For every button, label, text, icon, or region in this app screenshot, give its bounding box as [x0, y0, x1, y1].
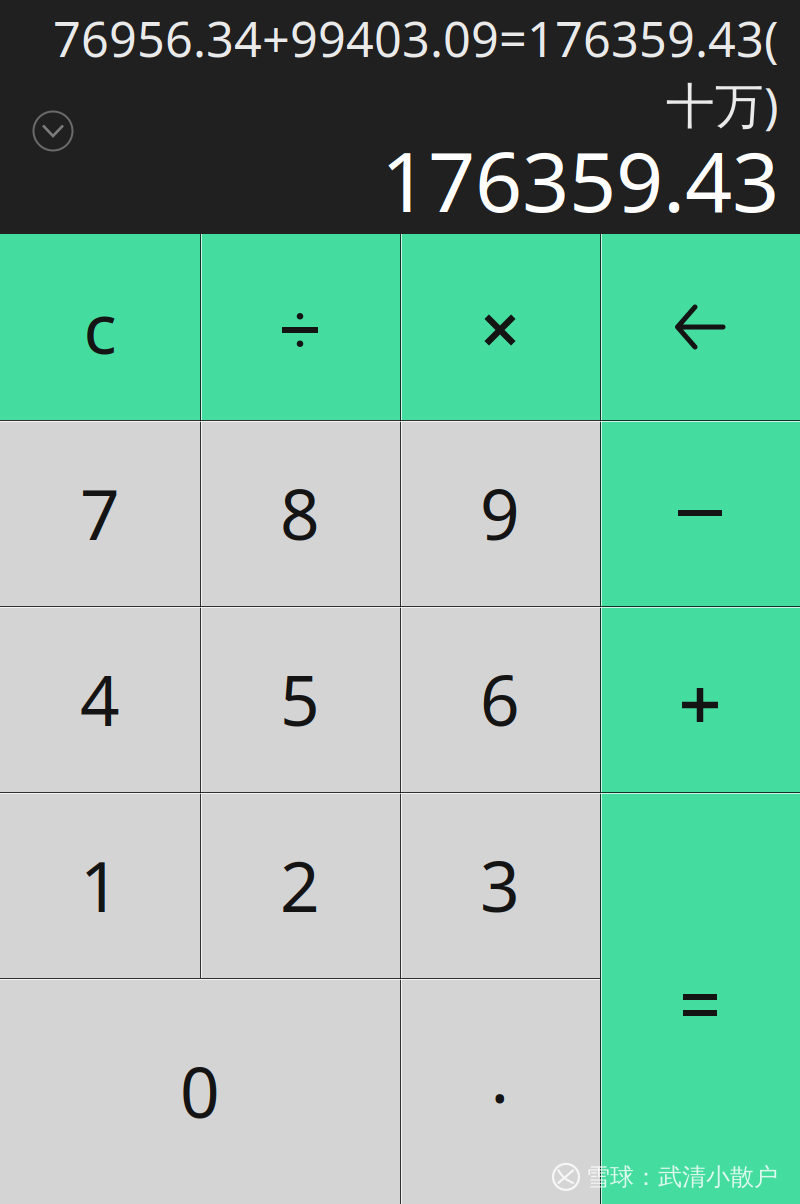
- staticText: 3: [480, 839, 520, 931]
- staticText: 7: [80, 467, 120, 559]
- staticText: c: [83, 281, 116, 373]
- button[interactable]: 4: [0, 606, 200, 792]
- button[interactable]: Collapse history: [22, 100, 84, 162]
- staticText: 76956.34+99403.09=176359.43(: [53, 5, 779, 71]
- button[interactable]: Equals: [600, 792, 800, 1204]
- staticText: 176359.43: [381, 125, 779, 235]
- staticText: 9: [480, 467, 520, 559]
- button[interactable]: Minus: [600, 420, 800, 606]
- button[interactable]: 3: [400, 792, 600, 978]
- button[interactable]: Plus: [600, 606, 800, 792]
- staticText: 5: [280, 653, 320, 745]
- staticText: 十万): [666, 71, 779, 138]
- button[interactable]: Divide: [200, 234, 400, 420]
- staticText: .: [490, 1030, 509, 1122]
- button[interactable]: 7: [0, 420, 200, 606]
- button[interactable]: Multiply: [400, 234, 600, 420]
- button[interactable]: Backspace: [600, 234, 800, 420]
- staticText: 0: [180, 1045, 220, 1137]
- button[interactable]: 5: [200, 606, 400, 792]
- button[interactable]: .: [400, 978, 600, 1204]
- staticText: 4: [80, 653, 120, 745]
- button[interactable]: 8: [200, 420, 400, 606]
- staticText: 雪球：武清小散户: [586, 1162, 778, 1192]
- button[interactable]: c: [0, 234, 200, 420]
- staticText: 2: [280, 839, 320, 931]
- staticText: 8: [280, 467, 320, 559]
- button[interactable]: 9: [400, 420, 600, 606]
- button[interactable]: 2: [200, 792, 400, 978]
- button[interactable]: 1: [0, 792, 200, 978]
- button[interactable]: 6: [400, 606, 600, 792]
- button[interactable]: 0: [0, 978, 400, 1204]
- staticText: 1: [80, 839, 120, 931]
- staticText: 6: [480, 653, 520, 745]
